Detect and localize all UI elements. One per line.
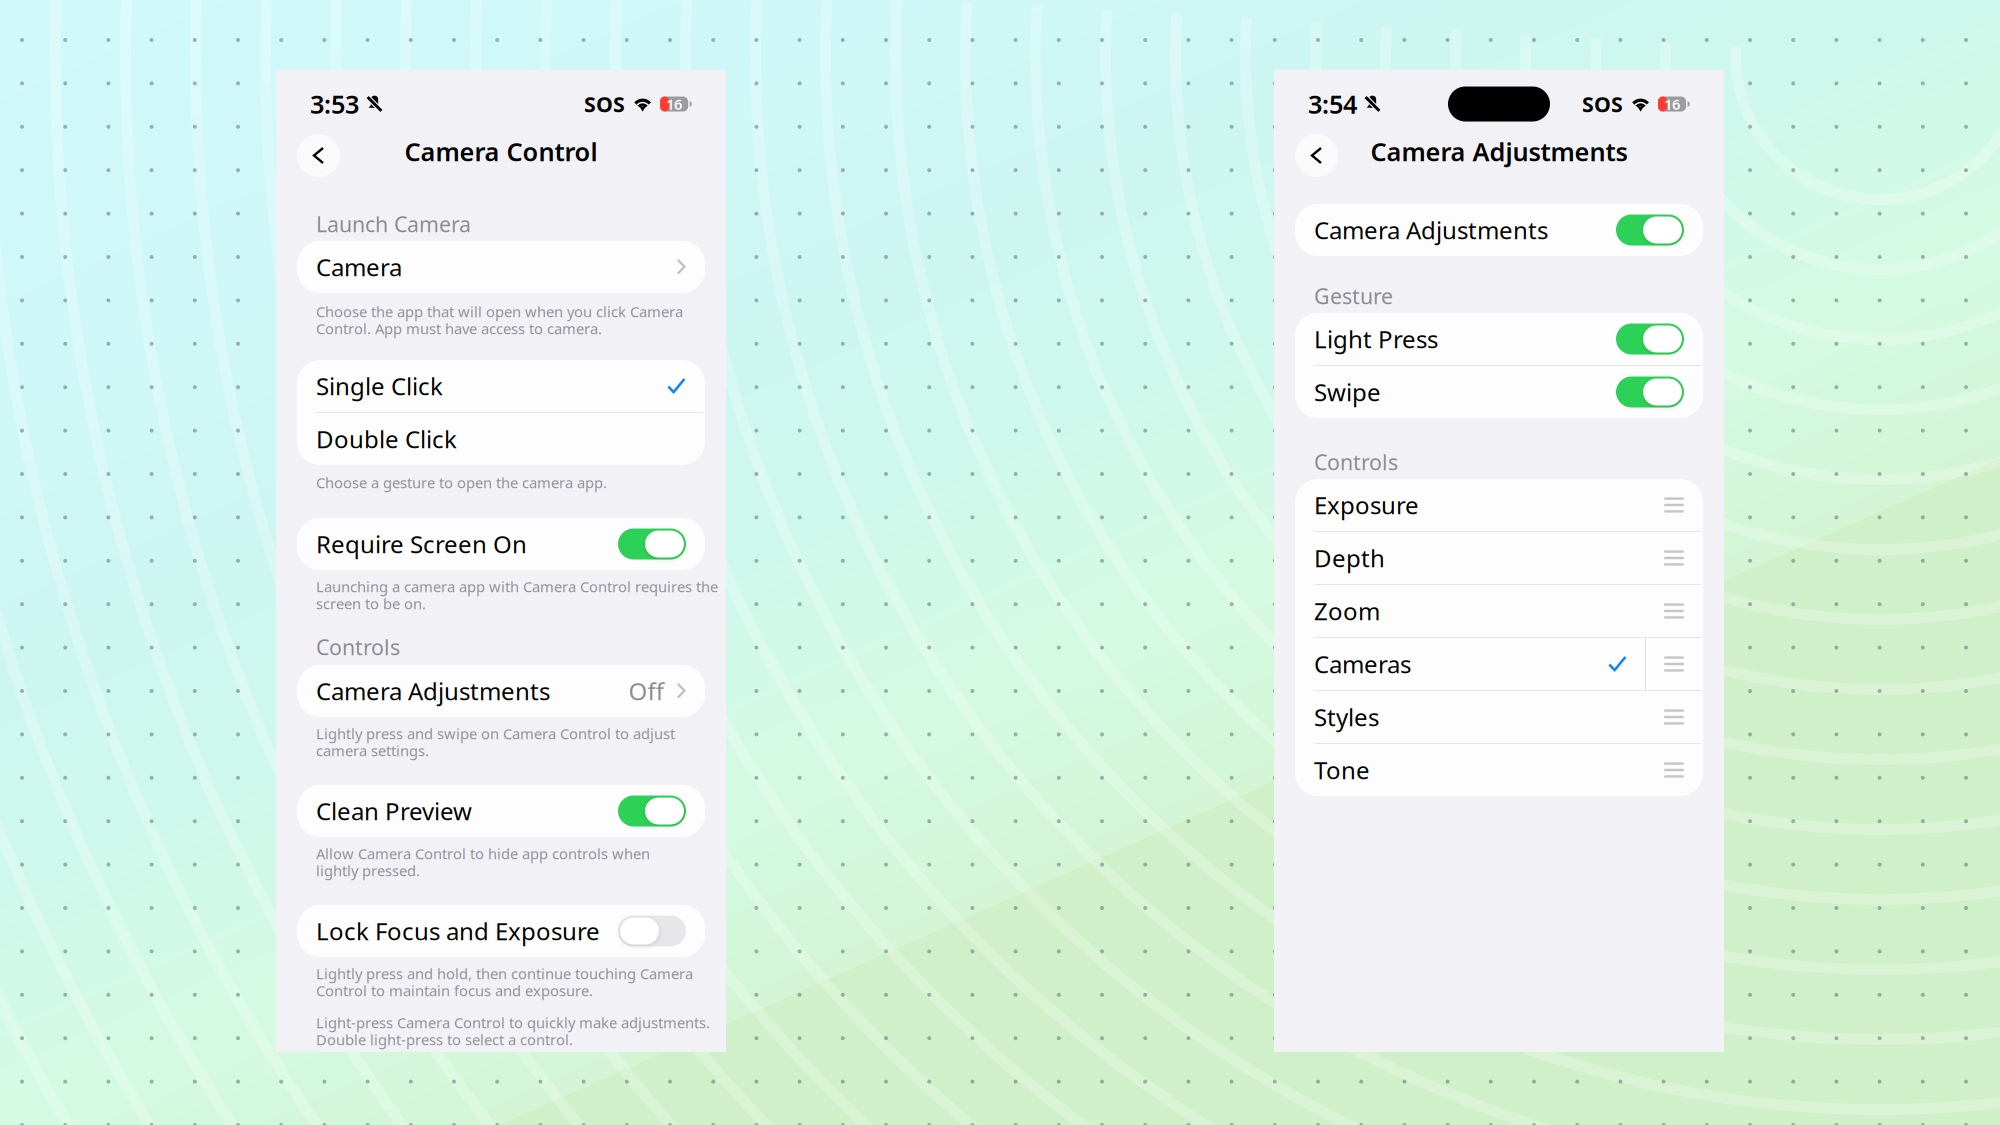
staticText: Tone — [1314, 754, 1370, 786]
staticText: 16 — [666, 94, 682, 114]
button[interactable]: Styles — [1295, 691, 1703, 743]
button[interactable]: Tone — [1295, 744, 1703, 796]
staticText: Double Click — [316, 423, 457, 455]
staticText: Swipe — [1314, 376, 1381, 408]
staticText: Lightly press and hold, then continue to… — [316, 964, 693, 983]
staticText: 3:53 — [310, 87, 359, 121]
staticText: Lock Focus and Exposure — [316, 915, 600, 947]
staticText: 3:54 — [1308, 87, 1357, 121]
button[interactable]: Cameras — [1295, 638, 1703, 690]
staticText: Choose the app that will open when you c… — [316, 302, 683, 321]
staticText: Light Press — [1314, 323, 1438, 355]
button[interactable]: Camera Adjustments — [1295, 204, 1703, 256]
staticText: Launch Camera — [316, 210, 471, 238]
staticText: Single Click — [316, 370, 443, 402]
button[interactable]: Single Click — [297, 360, 705, 412]
button[interactable]: Camera — [297, 241, 705, 293]
button[interactable]: Camera Adjustments — [297, 665, 705, 717]
staticText: Off — [628, 675, 664, 707]
staticText: Gesture — [1314, 282, 1393, 310]
staticText: Camera — [316, 251, 402, 283]
staticText: Styles — [1314, 701, 1379, 733]
staticText: Exposure — [1314, 489, 1419, 521]
staticText: Camera Adjustments — [316, 675, 550, 707]
button[interactable]: Clean Preview — [297, 785, 705, 837]
staticText: Camera Control — [404, 135, 597, 168]
button[interactable]: Zoom — [1295, 585, 1703, 637]
button[interactable]: Require Screen On — [297, 518, 705, 570]
staticText: Choose a gesture to open the camera app. — [316, 473, 607, 492]
staticText: screen to be on. — [316, 594, 426, 613]
staticText: Light-press Camera Control to quickly ma… — [316, 1013, 710, 1032]
button[interactable]: Double Click — [297, 413, 705, 465]
button[interactable]: Lock Focus and Exposure — [297, 905, 705, 957]
staticText: Clean Preview — [316, 795, 472, 827]
staticText: SOS — [1582, 90, 1623, 118]
button[interactable]: Depth — [1295, 532, 1703, 584]
staticText: Depth — [1314, 542, 1385, 574]
button[interactable]: Exposure — [1295, 479, 1703, 531]
staticText: 16 — [1664, 94, 1680, 114]
button[interactable]: Back — [297, 134, 340, 177]
staticText: Camera Adjustments — [1314, 214, 1548, 246]
staticText: Control. App must have access to camera. — [316, 319, 602, 338]
staticText: Allow Camera Control to hide app control… — [316, 844, 650, 863]
staticText: Zoom — [1314, 595, 1380, 627]
staticText: Controls — [1314, 448, 1398, 476]
staticText: SOS — [584, 90, 625, 118]
button[interactable]: Light Press — [1295, 313, 1703, 365]
staticText: Camera Adjustments — [1370, 135, 1627, 168]
staticText: Control to maintain focus and exposure. — [316, 981, 593, 1000]
staticText: Cameras — [1314, 648, 1411, 680]
staticText: Double light-press to select a control. — [316, 1030, 573, 1049]
staticText: Launching a camera app with Camera Contr… — [316, 577, 718, 596]
button[interactable]: Back — [1295, 134, 1338, 177]
staticText: Controls — [316, 633, 400, 661]
staticText: lightly pressed. — [316, 861, 420, 880]
staticText: camera settings. — [316, 741, 429, 760]
staticText: Require Screen On — [316, 528, 527, 560]
staticText: Lightly press and swipe on Camera Contro… — [316, 724, 675, 743]
button[interactable]: Swipe — [1295, 366, 1703, 418]
